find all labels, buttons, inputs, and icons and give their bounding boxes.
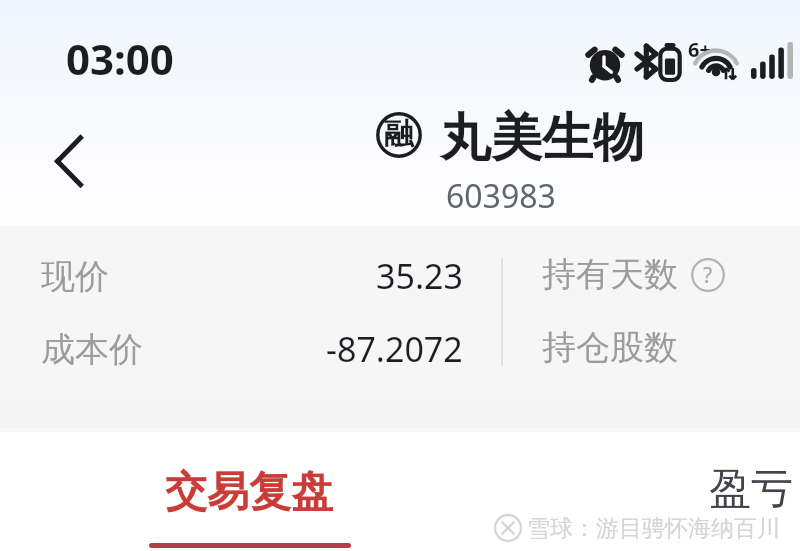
button[interactable]: 交易复盘 [149, 450, 351, 551]
staticText: 35.23 [376, 253, 463, 299]
staticText: 盈亏 [709, 463, 793, 516]
staticText: 雪球：游目骋怀海纳百川 [527, 514, 780, 543]
staticText: 持有天数 [542, 253, 678, 296]
button[interactable]: Help [691, 258, 725, 292]
staticText: ? [703, 261, 713, 290]
staticText: 03:00 [66, 30, 174, 87]
staticText: 丸美生物 [440, 106, 644, 170]
staticText: 成本价 [41, 328, 143, 371]
staticText: -87.2072 [326, 326, 463, 372]
button[interactable]: 盈亏 [700, 450, 800, 540]
staticText: 6+ [688, 36, 711, 63]
button[interactable]: Back [30, 124, 106, 200]
staticText: 交易复盘 [165, 466, 333, 519]
staticText: 603983 [446, 174, 556, 218]
staticText: 融 [384, 115, 414, 153]
staticText: 持仓股数 [542, 326, 678, 369]
staticText: 现价 [41, 255, 109, 298]
